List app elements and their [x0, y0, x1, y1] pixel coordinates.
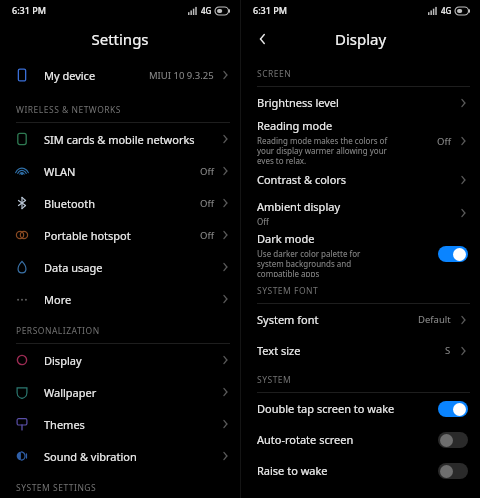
staticText: Bluetooth — [44, 196, 200, 211]
button[interactable]: Data usage — [0, 251, 240, 283]
button[interactable]: Brightness level — [241, 87, 480, 118]
button[interactable]: Themes — [0, 408, 240, 440]
button[interactable] — [438, 432, 468, 448]
staticText: SYSTEM SETTINGS — [16, 482, 240, 492]
staticText: Auto-rotate screen — [257, 432, 354, 447]
button[interactable]: Bluetooth — [0, 187, 240, 219]
staticText: Off — [200, 165, 214, 178]
staticText: Raise to wake — [257, 463, 328, 478]
button[interactable]: Double tap screen to wake — [241, 393, 480, 424]
button[interactable]: Dark mode — [241, 231, 480, 277]
staticText: MIUI 10 9.3.25 — [149, 69, 214, 82]
staticText: Data usage — [44, 260, 218, 275]
staticText: System font — [257, 312, 319, 327]
staticText: 6:31 PM — [12, 4, 46, 16]
staticText: Portable hotspot — [44, 228, 200, 243]
staticText: Display — [335, 29, 387, 49]
staticText: PERSONALIZATION — [16, 325, 240, 337]
button[interactable] — [438, 246, 468, 262]
staticText: Settings — [91, 29, 149, 49]
staticText: Off — [200, 197, 214, 210]
staticText: Dark mode — [257, 231, 315, 246]
staticText: S — [445, 344, 451, 357]
staticText: WIRELESS & NETWORKS — [16, 104, 240, 116]
staticText: Themes — [44, 417, 218, 432]
staticText: WLAN — [44, 164, 200, 179]
button[interactable]: Portable hotspot — [0, 219, 240, 251]
staticText: Contrast & colors — [257, 172, 347, 187]
staticText: SCREEN — [257, 68, 480, 80]
staticText: My device — [44, 68, 149, 83]
button[interactable]: Sound & vibration — [0, 440, 240, 472]
staticText: 6:31 PM — [253, 4, 287, 16]
button[interactable]: Reading mode — [241, 118, 480, 164]
staticText: Reading mode makes the colors of your di… — [257, 135, 401, 164]
staticText: Wallpaper — [44, 385, 218, 400]
staticText: 4G — [441, 5, 452, 16]
button[interactable]: Raise to wake — [241, 455, 480, 486]
button[interactable]: WLAN — [0, 155, 240, 187]
staticText: Double tap screen to wake — [257, 401, 395, 416]
button[interactable]: Back — [251, 27, 275, 51]
staticText: Default — [418, 313, 451, 326]
button[interactable]: Ambient display — [241, 195, 480, 231]
button[interactable]: Wallpaper — [0, 376, 240, 408]
staticText: 4G — [201, 5, 212, 16]
button[interactable]: More — [0, 283, 240, 315]
staticText: SIM cards & mobile networks — [44, 132, 218, 147]
staticText: SYSTEM FONT — [257, 285, 480, 297]
staticText: Text size — [257, 343, 301, 358]
button[interactable]: My device — [0, 58, 240, 92]
staticText: Sound & vibration — [44, 449, 218, 464]
button[interactable]: Display — [0, 344, 240, 376]
staticText: Off — [437, 135, 451, 148]
button[interactable] — [438, 463, 468, 479]
button[interactable]: Auto-rotate screen — [241, 424, 480, 455]
staticText: Display — [44, 353, 218, 368]
button[interactable]: SIM cards & mobile networks — [0, 123, 240, 155]
staticText: Use darker color palette for system back… — [257, 248, 387, 277]
staticText: Reading mode — [257, 118, 333, 133]
button[interactable] — [438, 401, 468, 417]
staticText: Off — [257, 216, 456, 227]
staticText: Off — [200, 229, 214, 242]
button[interactable]: Text size — [241, 335, 480, 366]
staticText: SYSTEM — [257, 374, 480, 386]
button[interactable]: System font — [241, 304, 480, 335]
button[interactable]: Contrast & colors — [241, 164, 480, 195]
staticText: More — [44, 292, 218, 307]
staticText: Brightness level — [257, 95, 339, 110]
staticText: Ambient display — [257, 199, 341, 214]
